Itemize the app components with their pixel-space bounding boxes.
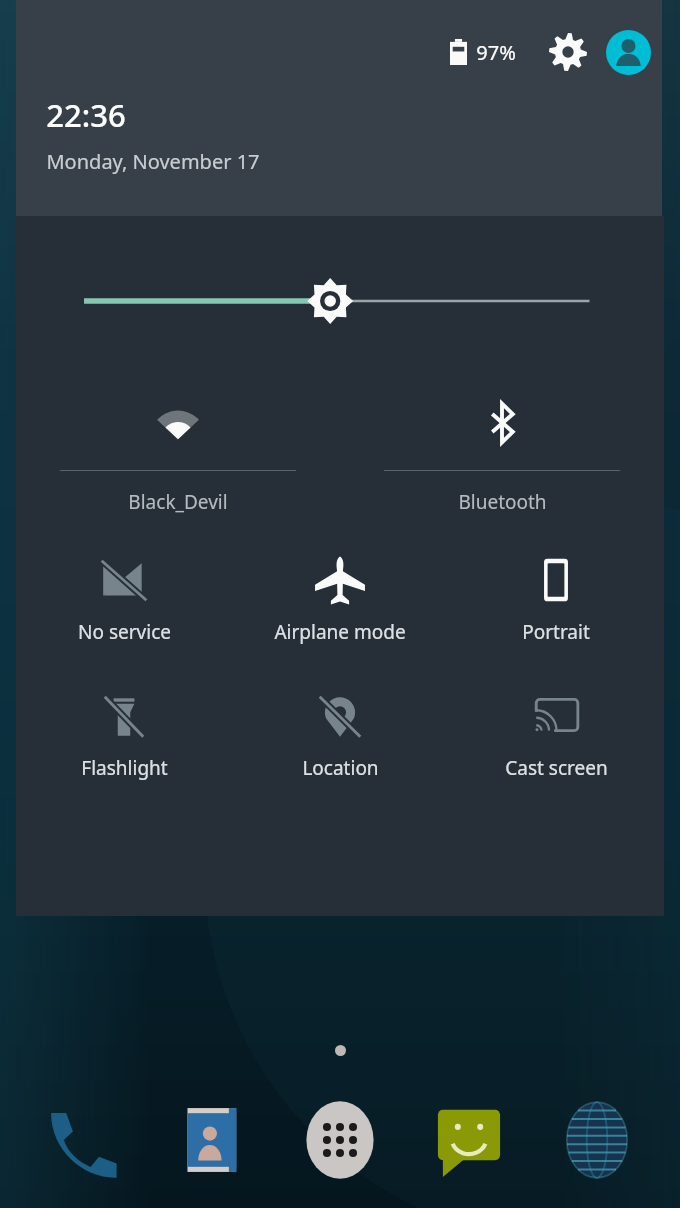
button[interactable]: Bluetooth (340, 390, 664, 515)
button[interactable]: Airplane mode (232, 549, 448, 645)
button[interactable]: Cast screen (448, 685, 664, 781)
button[interactable]: User profile (604, 28, 652, 76)
button[interactable]: Location (232, 685, 448, 781)
staticText: Black_Devil (128, 489, 228, 515)
button[interactable]: No service (16, 549, 232, 645)
staticText: Cast screen (505, 755, 608, 781)
button[interactable]: Contacts (165, 1094, 257, 1186)
button[interactable]: Brightness (16, 274, 664, 328)
button[interactable]: Flashlight (16, 685, 232, 781)
button[interactable]: Messaging (423, 1094, 515, 1186)
staticText: Airplane mode (274, 619, 406, 645)
button[interactable]: Portrait (448, 549, 664, 645)
staticText: Bluetooth (458, 489, 547, 515)
button[interactable]: Browser (551, 1094, 643, 1186)
button[interactable]: Black_Devil (16, 390, 340, 515)
staticText: Location (302, 755, 379, 781)
staticText: Flashlight (81, 755, 168, 781)
button[interactable]: All apps (294, 1094, 386, 1186)
button[interactable]: Settings (544, 28, 592, 76)
staticText: Portrait (522, 619, 590, 645)
staticText: No service (78, 619, 171, 645)
button[interactable]: Phone (37, 1094, 129, 1186)
staticText: 97% (476, 39, 516, 66)
staticText: 22:36 (46, 94, 126, 136)
staticText: Monday, November 17 (46, 148, 260, 175)
